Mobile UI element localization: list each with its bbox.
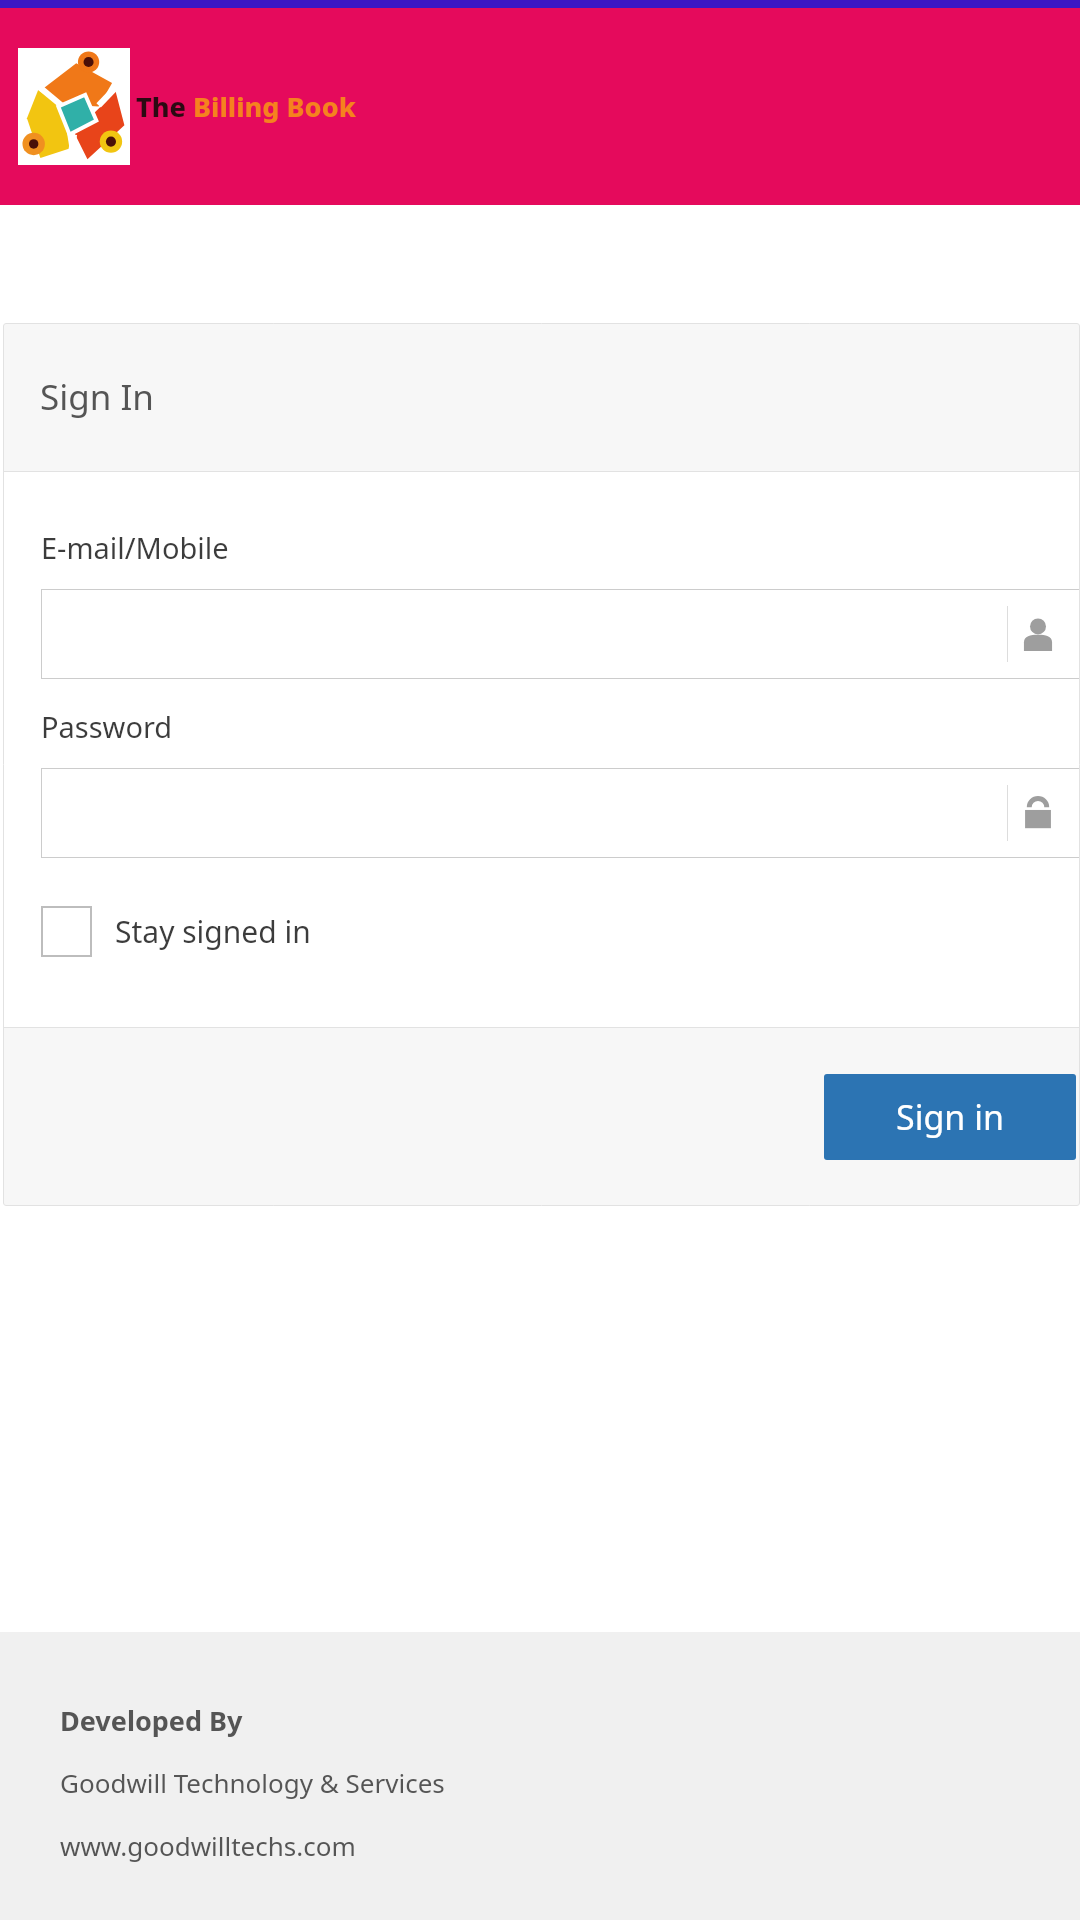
staticText: www.goodwilltechs.com — [60, 1828, 356, 1863]
button[interactable]: Sign in — [824, 1074, 1076, 1160]
staticText: Billing Book — [193, 88, 356, 125]
staticText: E-mail/Mobile — [41, 528, 229, 567]
button[interactable]: Password — [41, 768, 1080, 858]
staticText: Sign In — [40, 373, 154, 421]
staticText: Sign in — [896, 1094, 1004, 1140]
staticText: Developed By — [60, 1702, 243, 1739]
other: The Billing Book logo — [18, 48, 130, 165]
staticText: Goodwill Technology & Services — [60, 1765, 445, 1800]
staticText: Password — [41, 707, 173, 746]
staticText: The — [136, 88, 186, 125]
button[interactable]: Stay signed in — [41, 906, 311, 957]
button[interactable]: E-mail or Mobile — [41, 589, 1080, 679]
staticText: Stay signed in — [115, 911, 311, 952]
